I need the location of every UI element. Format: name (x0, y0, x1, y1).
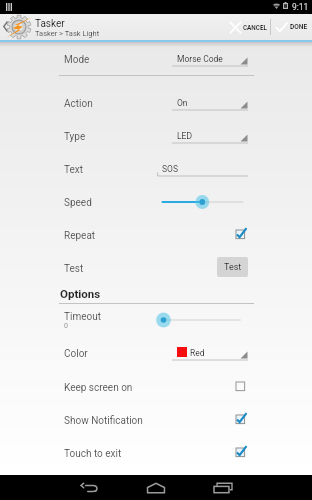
staticText: Test (224, 262, 242, 273)
staticText: Red (190, 348, 205, 358)
staticText: Type (64, 131, 86, 143)
staticText: Show Notification (64, 415, 143, 427)
button[interactable] (0, 115, 312, 148)
button[interactable]: Timeout slider (153, 310, 245, 330)
staticText: 0 (64, 322, 68, 330)
staticText: Action (64, 98, 93, 110)
staticText: Mode (64, 54, 90, 66)
button[interactable] (0, 404, 312, 437)
button[interactable] (0, 48, 312, 76)
staticText: 9:11 (292, 2, 309, 12)
staticText: Color (64, 348, 88, 360)
button[interactable] (0, 437, 312, 470)
staticText: LED (177, 131, 192, 141)
staticText: Text (64, 164, 84, 176)
button[interactable]: Test (217, 257, 248, 277)
staticText: DONE (290, 23, 308, 31)
button[interactable]: Recent apps (201, 475, 245, 500)
staticText: Repeat (64, 230, 96, 242)
button[interactable]: Home (134, 475, 178, 500)
button[interactable] (0, 181, 312, 214)
button[interactable]: Toggle (231, 443, 250, 462)
staticText: CANCEL (243, 24, 267, 31)
button[interactable] (0, 338, 312, 371)
button[interactable]: Toggle (231, 377, 250, 396)
button[interactable] (0, 214, 312, 247)
button[interactable] (0, 82, 312, 115)
staticText: Keep screen on (64, 382, 133, 394)
button[interactable] (0, 247, 312, 280)
button[interactable]: Speed slider (158, 192, 246, 212)
staticText: Options (60, 287, 101, 300)
button[interactable]: Toggle (231, 410, 250, 429)
staticText: Tasker (35, 18, 65, 30)
button[interactable] (0, 371, 312, 404)
button[interactable] (0, 305, 312, 338)
button[interactable]: Back (67, 475, 111, 500)
staticText: Touch to exit (64, 448, 122, 460)
staticText: SOS (162, 164, 178, 174)
button[interactable]: DONE (275, 14, 308, 40)
staticText: Morse Code (177, 54, 223, 64)
staticText: On (177, 98, 188, 108)
staticText: Timeout (64, 311, 101, 323)
staticText: Test (64, 263, 84, 275)
staticText: Tasker > Task Light (35, 29, 100, 38)
staticText: Speed (64, 197, 92, 209)
button[interactable]: CANCEL (228, 14, 267, 40)
button[interactable] (0, 148, 312, 181)
button[interactable]: Toggle (231, 225, 250, 244)
